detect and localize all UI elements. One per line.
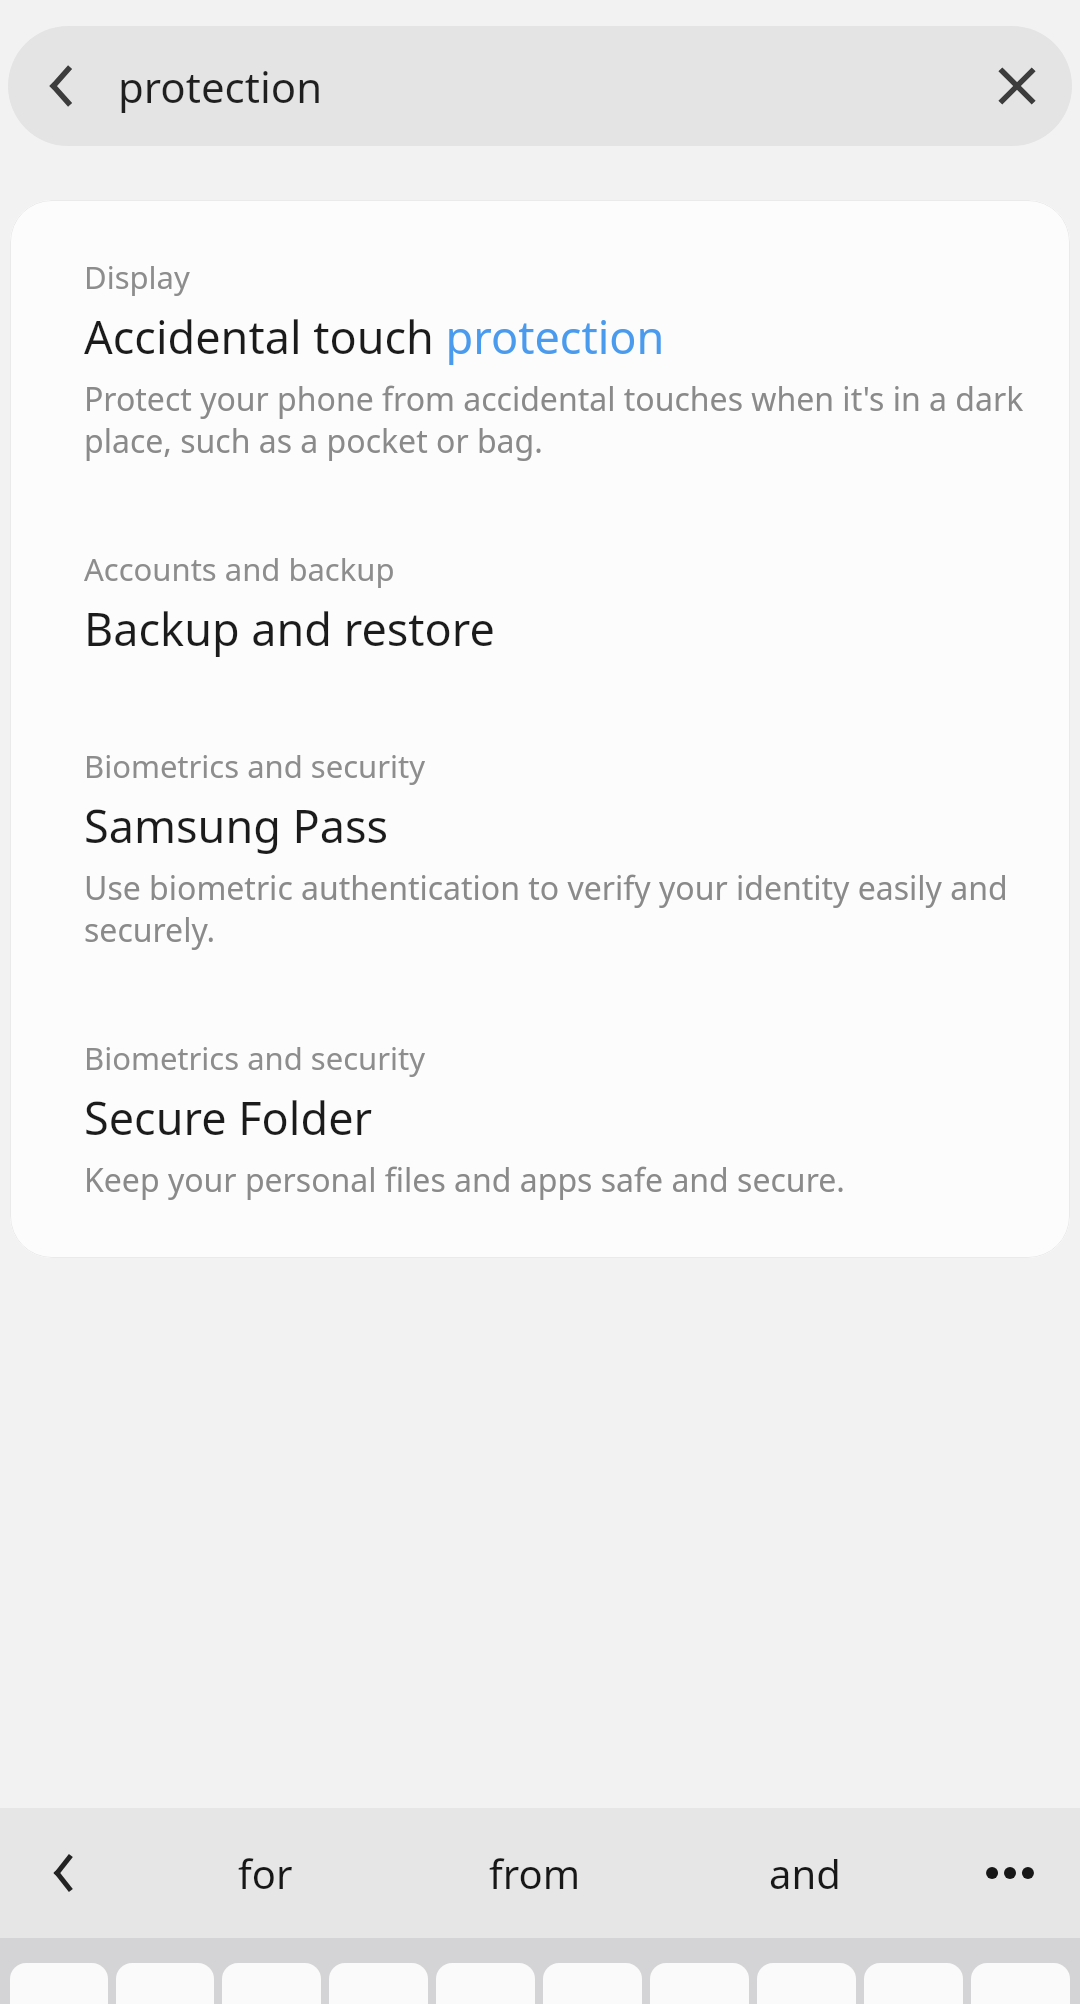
staticText: Secure Folder (84, 1087, 373, 1148)
button[interactable]: Accounts and backup (10, 548, 1070, 659)
button[interactable]: Biometrics and security (10, 1037, 1070, 1202)
button[interactable] (436, 1963, 535, 2004)
button[interactable] (10, 1963, 108, 2004)
staticText: and (769, 1846, 841, 1900)
staticText: Use biometric authentication to verify y… (84, 866, 1030, 951)
staticText: from (489, 1846, 581, 1900)
staticText: Biometrics and security (84, 1037, 425, 1079)
staticText: Protect your phone from accidental touch… (84, 377, 1030, 462)
button[interactable] (650, 1963, 749, 2004)
button[interactable] (222, 1963, 321, 2004)
staticText: Accounts and backup (84, 548, 395, 590)
staticText: Accidental touch protection (84, 306, 665, 367)
button[interactable] (864, 1963, 963, 2004)
button[interactable] (757, 1963, 856, 2004)
staticText: Display (84, 256, 190, 298)
button[interactable]: Previous suggestions (0, 1808, 130, 1938)
button[interactable] (543, 1963, 642, 2004)
staticText: Samsung Pass (84, 795, 389, 856)
button[interactable]: Back (8, 26, 118, 146)
staticText: Keep your personal files and apps safe a… (84, 1158, 845, 1202)
staticText: protection (118, 58, 962, 115)
button[interactable]: and (670, 1808, 940, 1938)
button[interactable]: from (400, 1808, 670, 1938)
button[interactable]: More options (940, 1808, 1080, 1938)
button[interactable] (116, 1963, 214, 2004)
button[interactable]: Clear search (962, 26, 1072, 146)
button[interactable] (971, 1963, 1070, 2004)
button[interactable]: for (130, 1808, 400, 1938)
staticText: for (238, 1846, 293, 1900)
button[interactable]: Display (10, 256, 1070, 462)
button[interactable] (329, 1963, 428, 2004)
staticText: Biometrics and security (84, 745, 425, 787)
button[interactable]: Biometrics and security (10, 745, 1070, 951)
staticText: Backup and restore (84, 598, 495, 659)
